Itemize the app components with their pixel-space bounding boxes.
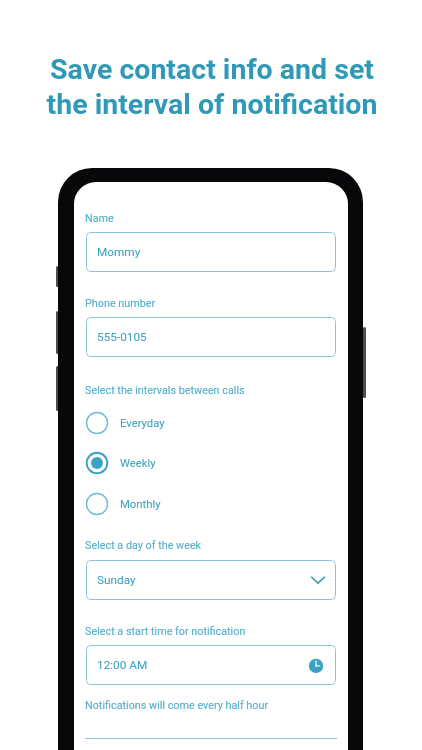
- button[interactable]: Sunday: [86, 560, 336, 600]
- staticText: Save contact info and set the interval o…: [1, 53, 422, 121]
- button[interactable]: 12:00 AM: [86, 645, 336, 685]
- staticText: 555-0105: [97, 330, 147, 344]
- staticText: 12:00 AM: [97, 658, 148, 672]
- button[interactable]: 555-0105: [86, 317, 336, 357]
- other: Open day of week dropdown: [310, 572, 326, 588]
- button[interactable]: Monthly: [85, 487, 335, 521]
- other: Pick start time: [308, 657, 324, 673]
- staticText: Name: [85, 212, 114, 225]
- staticText: Weekly: [120, 457, 156, 470]
- staticText: Select a day of the week: [85, 539, 202, 552]
- staticText: Notifications will come every half hour: [85, 699, 269, 712]
- button[interactable]: Everyday: [85, 406, 335, 440]
- staticText: Select a start time for notification: [85, 625, 246, 638]
- staticText: Mommy: [97, 245, 141, 259]
- button[interactable]: Weekly: [85, 446, 335, 480]
- staticText: Monthly: [120, 498, 161, 511]
- staticText: Sunday: [97, 573, 136, 587]
- staticText: Everyday: [120, 417, 165, 430]
- staticText: Select the intervals between calls: [85, 384, 245, 397]
- staticText: Phone number: [85, 297, 156, 310]
- button[interactable]: Mommy: [86, 232, 336, 272]
